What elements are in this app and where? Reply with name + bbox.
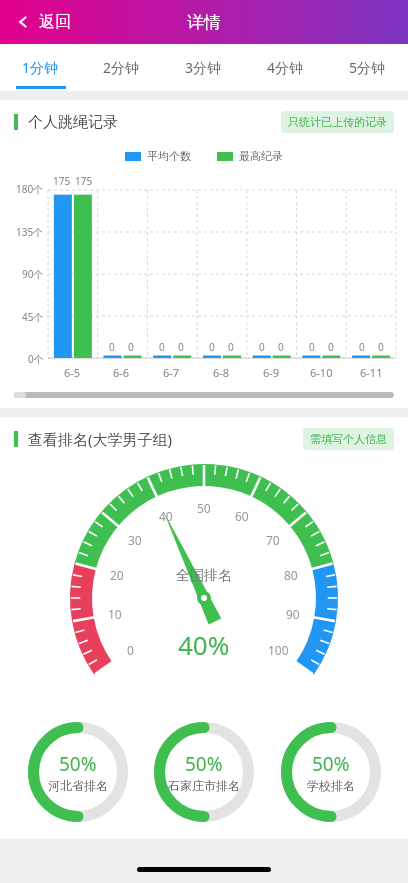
staticText: 石家庄市排名 <box>168 778 240 793</box>
staticText: 50% <box>59 751 97 777</box>
staticText: 6-7 <box>163 365 180 380</box>
staticText: 20 <box>110 567 124 583</box>
staticText: 1分钟 <box>22 58 59 77</box>
staticText: 100 <box>268 642 289 658</box>
staticText: 只统计已上传的记录 <box>288 115 387 129</box>
staticText: 0 <box>159 340 165 354</box>
staticText: 50% <box>185 751 223 777</box>
staticText: 70 <box>266 532 280 548</box>
staticText: 60 <box>235 508 249 524</box>
button[interactable]: 1分钟 <box>0 44 81 91</box>
staticText: 返回 <box>39 12 71 32</box>
staticText: 135个 <box>16 225 44 239</box>
button[interactable]: 3分钟 <box>162 44 244 91</box>
staticText: 平均个数 <box>147 149 191 163</box>
staticText: 0 <box>228 340 234 354</box>
staticText: 180个 <box>16 182 44 196</box>
staticText: 6-10 <box>310 365 333 380</box>
staticText: 最高纪录 <box>239 149 283 163</box>
button[interactable]: 5分钟 <box>326 44 408 91</box>
button[interactable]: 只统计已上传的记录 <box>281 111 394 133</box>
button[interactable]: 50% <box>25 719 131 825</box>
staticText: 0 <box>378 340 384 354</box>
staticText: 50 <box>197 500 211 516</box>
staticText: 0 <box>127 642 134 658</box>
staticText: 2分钟 <box>103 58 140 77</box>
staticText: 6-9 <box>263 365 280 380</box>
staticText: 全国排名 <box>176 567 232 585</box>
staticText: 80 <box>284 567 298 583</box>
staticText: 0 <box>128 340 134 354</box>
staticText: 需填写个人信息 <box>310 432 387 446</box>
staticText: 详情 <box>187 12 221 33</box>
button[interactable]: 50% <box>278 719 384 825</box>
staticText: 0 <box>259 340 265 354</box>
staticText: 0 <box>109 340 115 354</box>
staticText: 5分钟 <box>349 58 386 77</box>
staticText: 学校排名 <box>307 778 355 793</box>
staticText: 175 <box>75 174 93 188</box>
staticText: 40 <box>159 508 173 524</box>
staticText: 6-11 <box>360 365 383 380</box>
staticText: 个人跳绳记录 <box>28 113 118 132</box>
staticText: 90 <box>286 606 300 622</box>
staticText: 6-6 <box>113 365 130 380</box>
staticText: 0 <box>309 340 315 354</box>
staticText: 0 <box>328 340 334 354</box>
staticText: 6-8 <box>213 365 230 380</box>
staticText: 175 <box>53 174 71 188</box>
staticText: 查看排名(大学男子组) <box>28 429 173 449</box>
staticText: 30 <box>128 532 142 548</box>
button[interactable]: 4分钟 <box>244 44 326 91</box>
staticText: 0 <box>359 340 365 354</box>
staticText: 4分钟 <box>267 58 304 77</box>
button[interactable]: 50% <box>151 719 257 825</box>
staticText: 3分钟 <box>185 58 222 77</box>
staticText: 45个 <box>22 310 44 324</box>
staticText: 0 <box>178 340 184 354</box>
staticText: 0 <box>209 340 215 354</box>
staticText: 10 <box>108 606 122 622</box>
staticText: 40% <box>178 627 230 662</box>
button[interactable]: 需填写个人信息 <box>303 428 394 450</box>
staticText: 河北省排名 <box>48 778 108 793</box>
staticText: 6-5 <box>64 365 81 380</box>
staticText: 50% <box>312 751 350 777</box>
staticText: 90个 <box>22 267 44 281</box>
staticText: 0个 <box>28 352 44 366</box>
staticText: 0 <box>278 340 284 354</box>
button[interactable]: 2分钟 <box>81 44 162 91</box>
button[interactable]: 返回 <box>12 6 75 38</box>
